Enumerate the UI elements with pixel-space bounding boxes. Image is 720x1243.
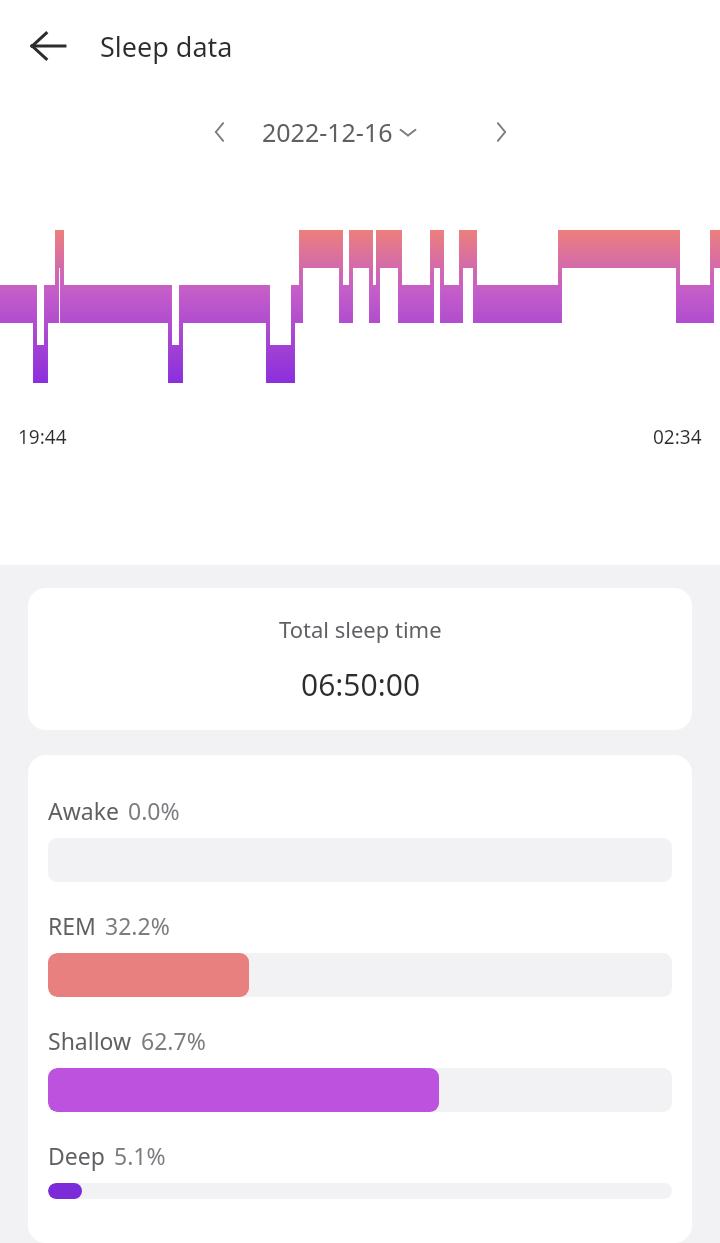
staticText: Sleep data [100, 28, 233, 65]
staticText: 19:44 [18, 424, 67, 450]
staticText: Deep [48, 1140, 105, 1171]
staticText: Shallow [48, 1025, 132, 1056]
staticText: 5.1% [114, 1140, 166, 1171]
staticText: 62.7% [141, 1025, 206, 1056]
button[interactable]: Previous day [196, 108, 244, 156]
staticText: 06:50:00 [301, 664, 421, 705]
button[interactable]: Total sleep time [28, 588, 692, 730]
staticText: Awake [48, 795, 119, 826]
button[interactable]: 2022-12-16 [256, 111, 425, 153]
staticText: 2022-12-16 [262, 115, 393, 149]
staticText: 02:34 [653, 424, 702, 450]
staticText: 0.0% [128, 795, 180, 826]
staticText: Total sleep time [279, 614, 442, 644]
button[interactable]: Next day [477, 108, 525, 156]
button[interactable]: Back [18, 16, 78, 76]
staticText: REM [48, 910, 96, 941]
staticText: 32.2% [105, 910, 170, 941]
